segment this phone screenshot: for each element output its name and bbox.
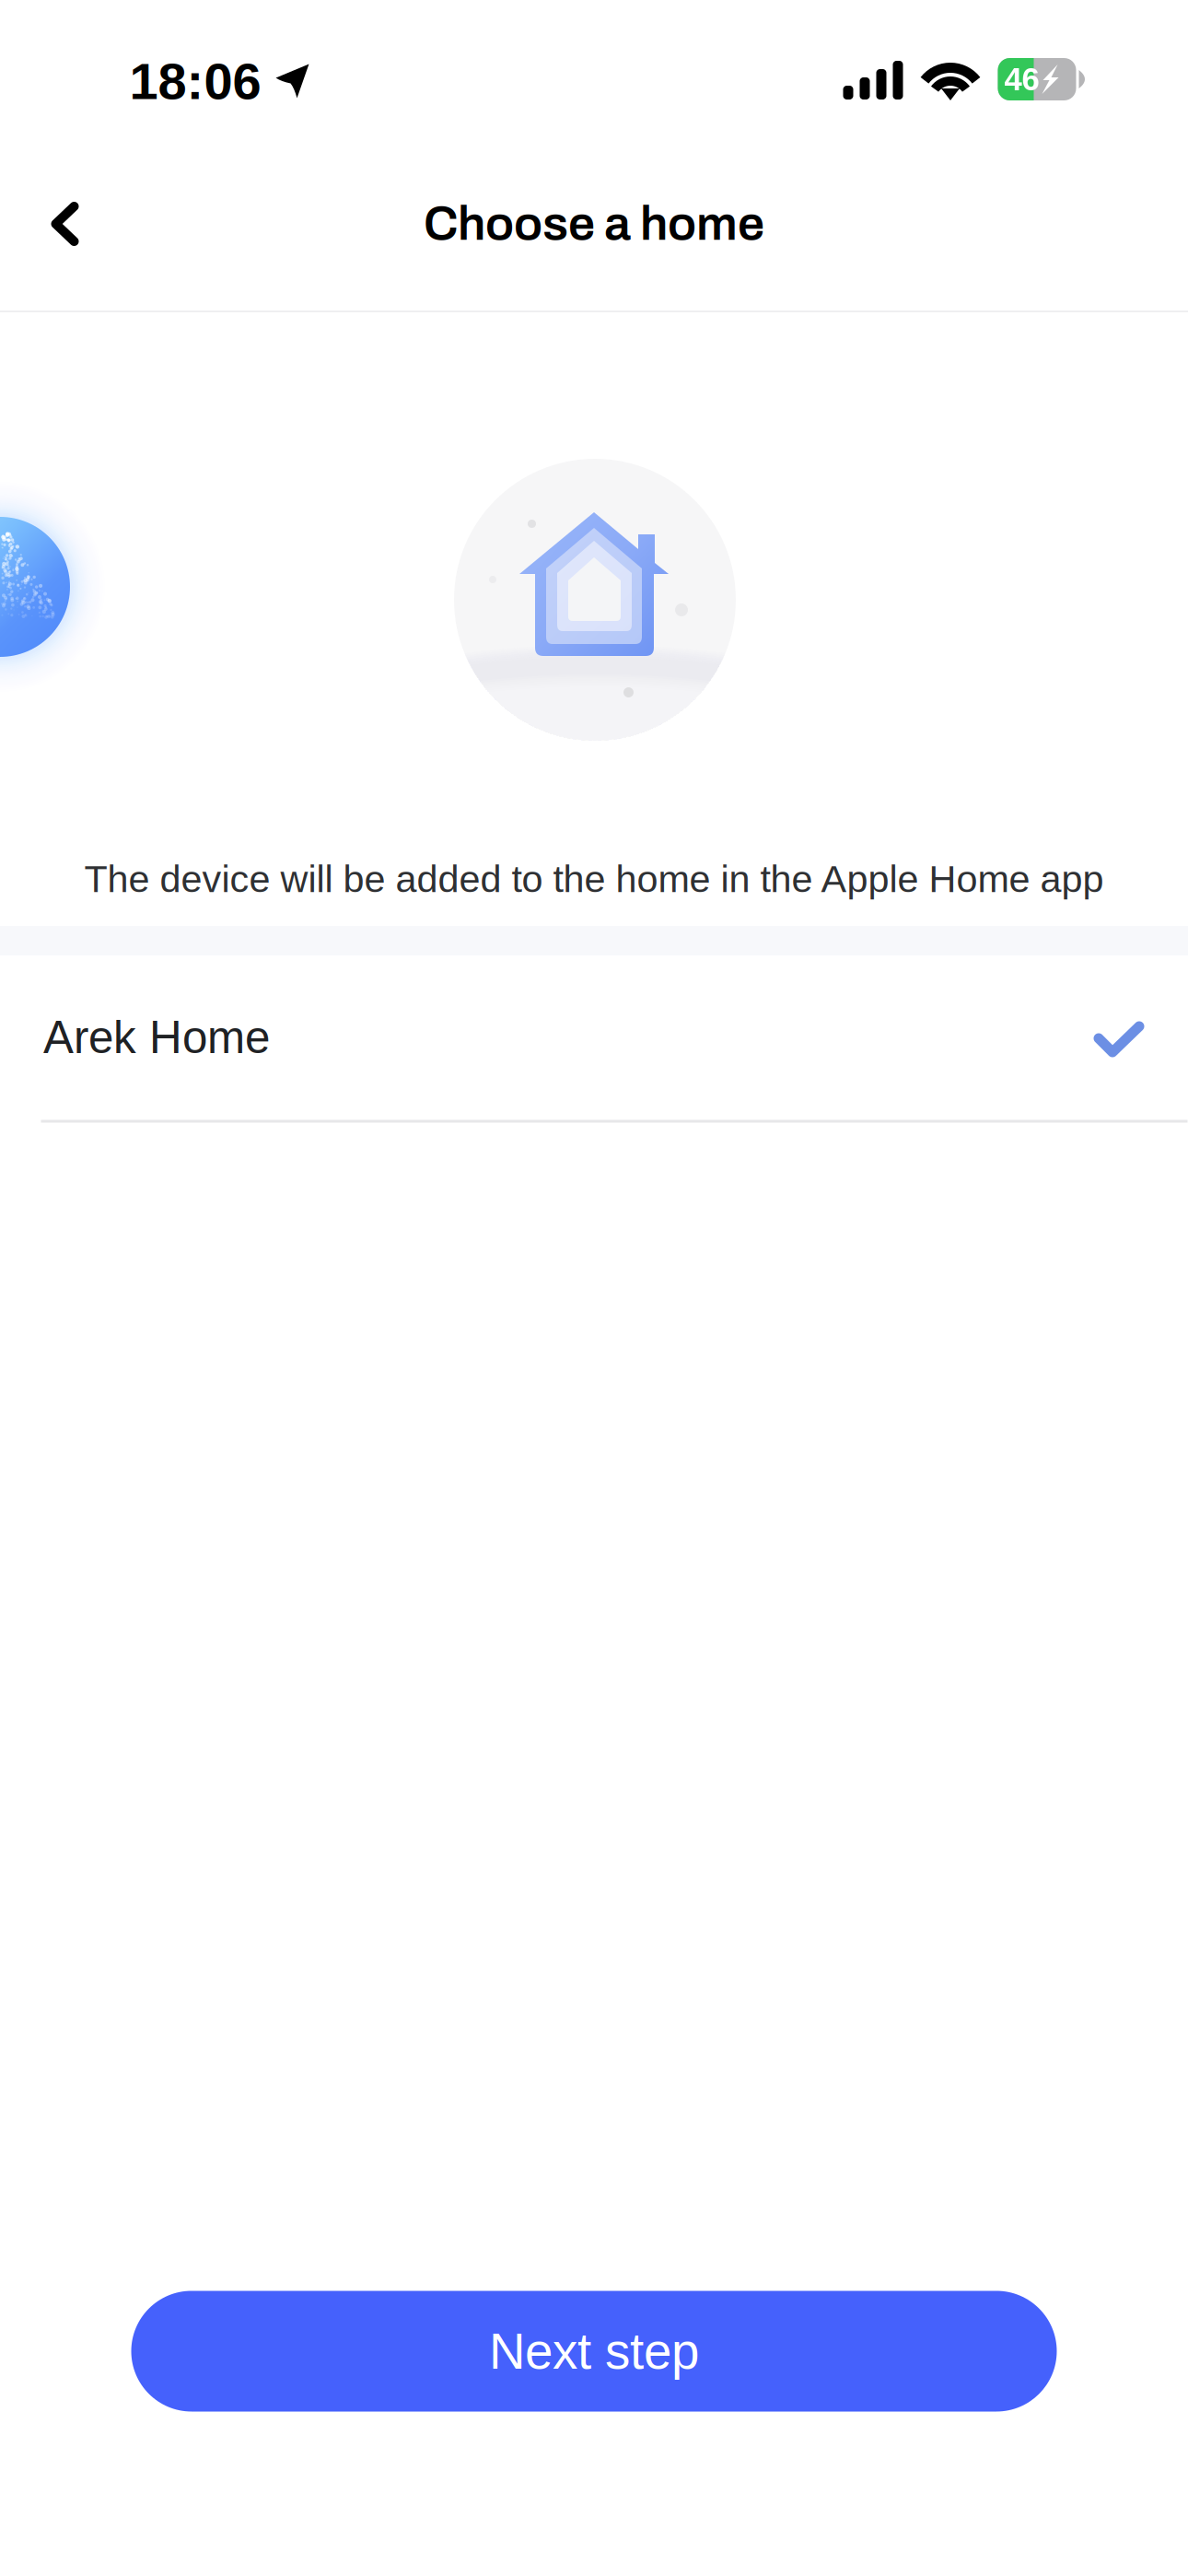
staticText: Arek Home	[43, 1012, 270, 1063]
button[interactable]: Next step	[131, 2291, 1057, 2412]
staticText: The device will be added to the home in …	[84, 858, 1104, 900]
staticText: 18:06	[129, 52, 261, 110]
staticText: Choose a home	[424, 198, 764, 250]
staticText: 46	[1004, 61, 1039, 97]
button[interactable]: Back	[14, 173, 115, 275]
staticText: Next step	[489, 2323, 699, 2379]
button[interactable]: Arek Home	[0, 955, 1188, 1123]
